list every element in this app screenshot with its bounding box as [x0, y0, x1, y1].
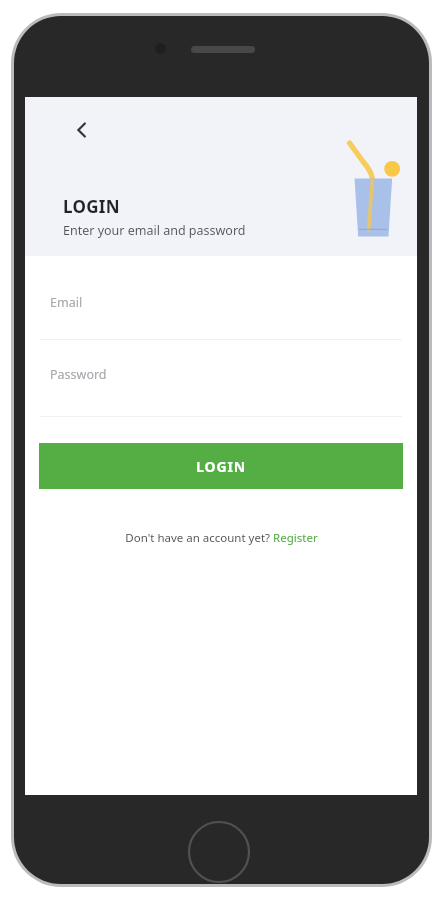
- button[interactable]: Email: [40, 256, 402, 340]
- staticText: Enter your email and password: [63, 222, 246, 239]
- staticText: Email: [50, 294, 83, 311]
- button[interactable]: Don't have an account yet? Register: [115, 525, 328, 551]
- button[interactable]: Password: [40, 340, 402, 417]
- staticText: Don't have an account yet? Register: [125, 530, 318, 546]
- button[interactable]: Back: [61, 109, 103, 151]
- staticText: LOGIN: [196, 457, 247, 476]
- staticText: LOGIN: [63, 195, 120, 218]
- staticText: Password: [50, 366, 107, 383]
- button[interactable]: LOGIN: [39, 443, 403, 489]
